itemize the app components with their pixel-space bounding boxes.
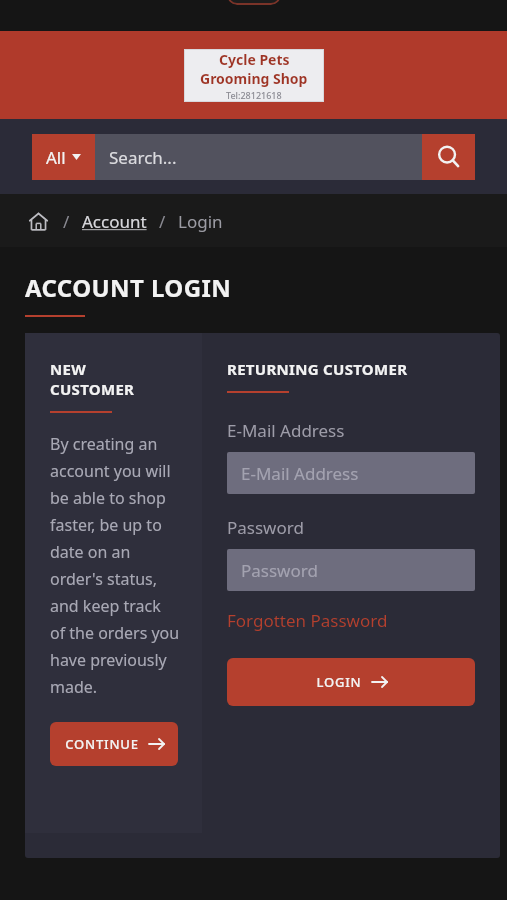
staticText: LOGIN <box>316 673 362 691</box>
button[interactable]: Close <box>227 0 281 5</box>
staticText: Forgotten Password <box>227 609 388 632</box>
button[interactable]: LOGIN <box>227 658 475 706</box>
button[interactable]: E-Mail Address <box>227 452 475 494</box>
staticText: By creating an account you will be able … <box>50 433 180 698</box>
staticText: / <box>159 210 166 233</box>
button[interactable]: Forgotten Password <box>227 609 388 632</box>
staticText: Login <box>178 210 223 233</box>
button[interactable]: CONTINUE <box>50 722 178 766</box>
staticText: Account <box>82 210 147 233</box>
staticText: Password <box>241 559 318 582</box>
staticText: ACCOUNT LOGIN <box>25 271 232 304</box>
staticText: CONTINUE <box>65 735 139 753</box>
staticText: All <box>46 146 66 169</box>
staticText: Tel:28121618 <box>226 89 282 101</box>
staticText: E-Mail Address <box>227 419 345 442</box>
staticText: Grooming Shop <box>200 69 308 88</box>
staticText: Search... <box>109 146 177 169</box>
button[interactable]: Password <box>227 549 475 591</box>
staticText: / <box>63 210 70 233</box>
staticText: NEW CUSTOMER <box>50 359 135 399</box>
button[interactable]: Cycle Pets <box>184 49 324 102</box>
staticText: Cycle Pets <box>219 50 290 69</box>
button[interactable]: All <box>32 134 95 180</box>
button[interactable]: Search... <box>95 134 422 180</box>
button[interactable]: Search <box>422 134 475 180</box>
button[interactable]: Home <box>25 208 51 234</box>
staticText: RETURNING CUSTOMER <box>227 359 408 379</box>
staticText: E-Mail Address <box>241 462 359 485</box>
staticText: Password <box>227 516 304 539</box>
button[interactable]: Account <box>82 210 147 233</box>
